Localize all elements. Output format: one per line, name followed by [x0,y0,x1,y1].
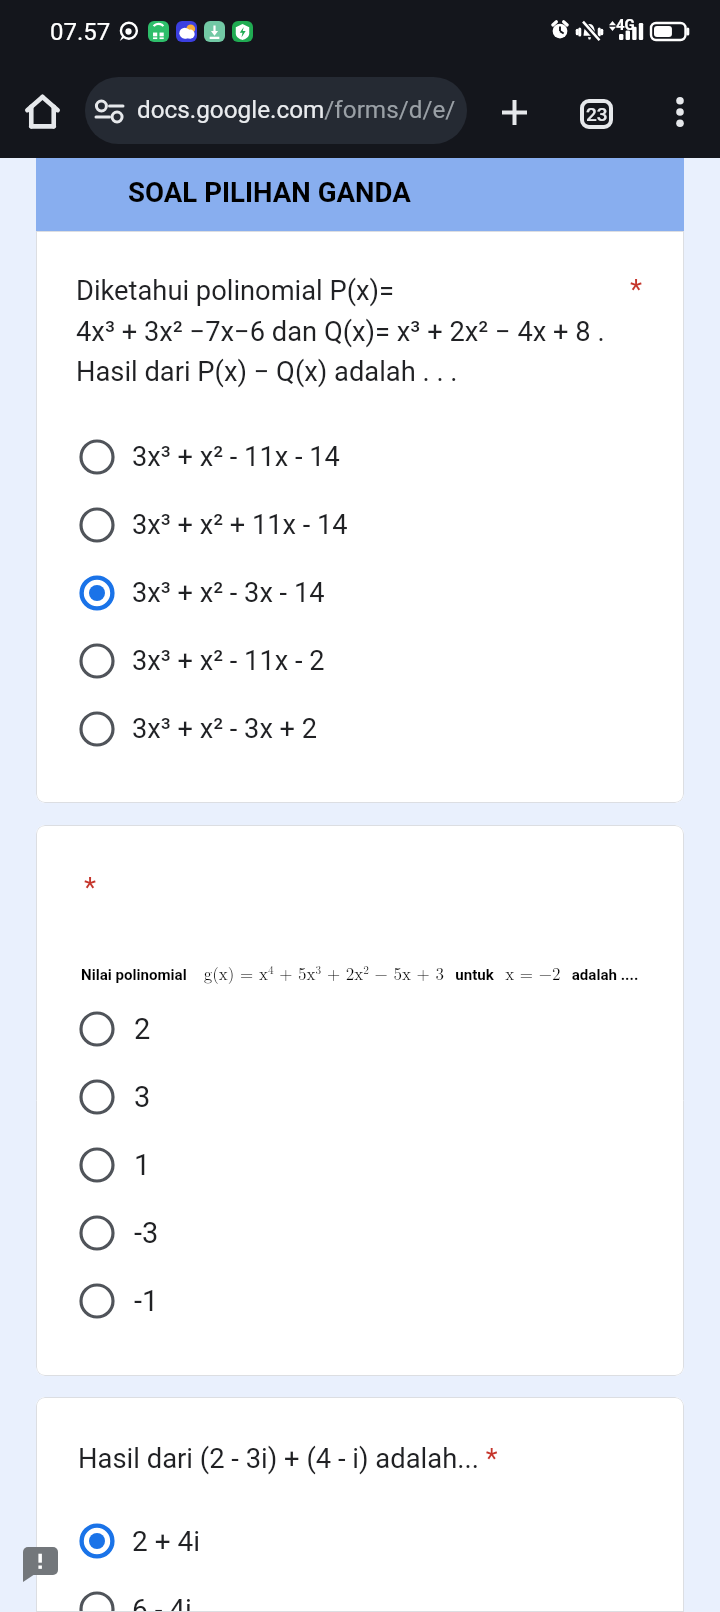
staticText: 2 + 4i [132,1525,201,1558]
button[interactable]: Answer option [80,423,580,491]
button[interactable]: Selected answer option [80,1507,500,1575]
staticText: 6 - 4i [132,1593,192,1612]
button[interactable]: Answer option [80,695,580,763]
button[interactable]: Answer option [80,1267,500,1335]
button[interactable]: Answer option [80,1216,114,1250]
staticText: Hasil dari (2 - 3i) + (4 - i) adalah... … [78,1443,498,1475]
button[interactable]: Answer option [80,491,580,559]
staticText: docs.google.com/forms/d/e/ [137,95,456,123]
staticText: 3 [134,1080,151,1114]
staticText: 3x³ + x² - 3x + 2 [132,713,318,745]
button[interactable]: docs.google.com/forms/d/e/ [85,77,467,144]
button[interactable]: Answer option [80,1284,114,1318]
staticText: -3 [134,1216,159,1250]
button[interactable]: Answer option [80,995,500,1063]
button[interactable]: Answer option [80,644,114,678]
staticText: 3x³ + x² - 3x - 14 [132,577,325,609]
staticText: Diketahui polinomial P(x)= 4x³ + 3x² −7x… [76,275,605,387]
staticText: SOAL PILIHAN GANDA [128,176,411,208]
button[interactable]: Answer option [80,1199,500,1267]
staticText: 07.57 [50,18,111,46]
button[interactable]: Answer option [80,627,580,695]
button[interactable]: Answer option [80,712,114,746]
staticText: 3x³ + x² + 11x - 14 [132,509,348,541]
staticText: * [630,273,643,306]
button[interactable]: Answer option [80,440,114,474]
button[interactable]: Report a problem [23,1547,58,1582]
button[interactable]: More options [652,86,704,138]
staticText: 23 [586,103,608,125]
staticText: * [84,871,97,904]
button[interactable]: Selected answer option [80,1524,114,1558]
button[interactable]: New tab [486,86,538,138]
staticText: 3x³ + x² - 11x - 2 [132,645,325,677]
staticText: 1 [134,1148,151,1182]
button[interactable]: Answer option [80,1012,114,1046]
button[interactable]: Answer option [80,1592,114,1612]
button[interactable]: Answer option [80,1063,500,1131]
button[interactable]: Answer option [80,1148,114,1182]
button[interactable]: Selected answer option [80,559,580,627]
staticText: 3x³ + x² - 11x - 14 [132,441,340,473]
button[interactable]: Selected answer option [80,576,114,610]
staticText: 2 [134,1012,151,1046]
button[interactable]: Answer option [80,508,114,542]
button[interactable]: Answer option [80,1080,114,1114]
staticText: -1 [134,1284,159,1318]
button[interactable]: Home [16,85,68,137]
staticText: 4G [616,16,635,34]
button[interactable]: Answer option [80,1575,500,1612]
button[interactable]: Open tabs [570,86,622,138]
button[interactable]: Answer option [80,1131,500,1199]
staticText: Nilai polinomial g(x) = x4 + 5x3 + 2x2 −… [81,961,639,985]
